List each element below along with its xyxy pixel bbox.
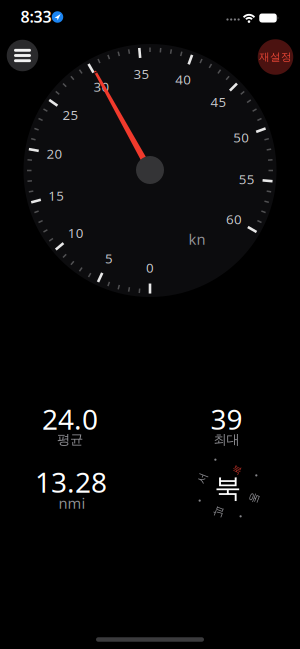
staticText: 55: [239, 170, 255, 188]
staticText: 동: [249, 492, 260, 505]
staticText: 40: [175, 70, 191, 88]
staticText: kn: [188, 229, 205, 249]
staticText: 39: [210, 400, 242, 438]
staticText: 24.0: [42, 400, 98, 438]
staticText: 45: [211, 93, 227, 111]
staticText: 15: [48, 187, 64, 204]
staticText: 0: [146, 259, 154, 276]
staticText: 재설정: [259, 50, 292, 63]
staticText: 북: [232, 464, 241, 475]
staticText: 50: [233, 128, 249, 146]
staticText: 35: [133, 65, 149, 83]
button[interactable]: 재설정: [258, 39, 293, 75]
button[interactable]: Menu: [7, 40, 38, 71]
staticText: 8:33: [20, 6, 51, 27]
staticText: 13.28: [35, 463, 107, 501]
staticText: 남: [213, 506, 224, 519]
staticText: 30: [93, 78, 109, 95]
staticText: 5: [105, 250, 113, 267]
staticText: 25: [62, 106, 78, 124]
staticText: 최대: [213, 431, 239, 448]
staticText: 서: [197, 472, 208, 485]
staticText: 10: [68, 224, 84, 242]
staticText: nmi: [58, 493, 85, 513]
staticText: 20: [46, 145, 62, 162]
staticText: 60: [226, 210, 242, 228]
staticText: 북: [214, 472, 241, 504]
staticText: 평균: [57, 431, 83, 448]
